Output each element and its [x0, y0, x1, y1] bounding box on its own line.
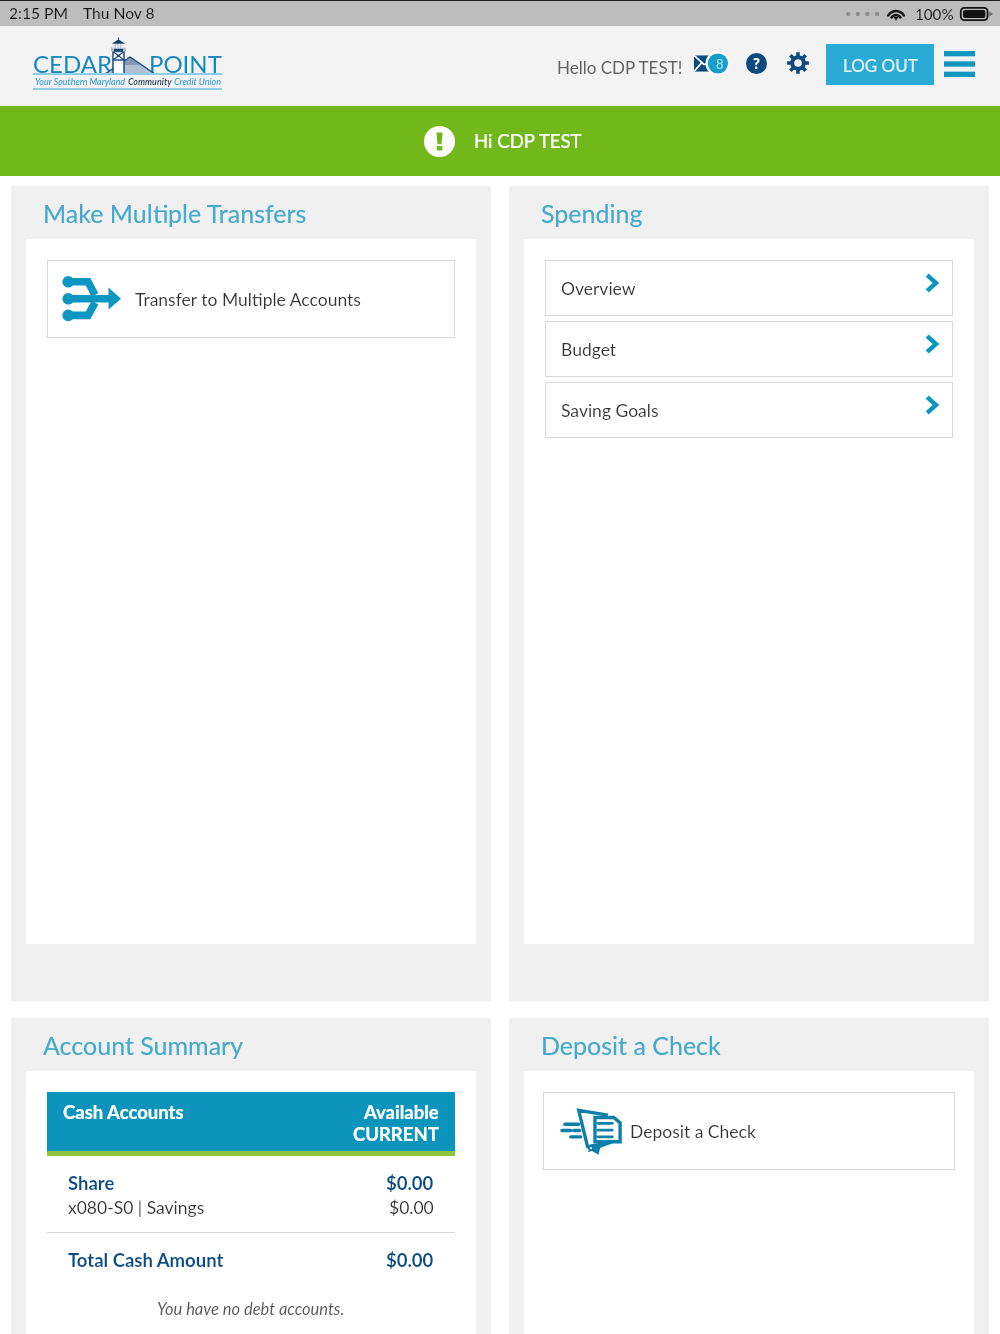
- staticText: Your Southern Maryland: [35, 76, 128, 87]
- staticText: Hello CDP TEST!: [557, 57, 683, 77]
- staticText: Total Cash Amount: [68, 1249, 224, 1271]
- staticText: 8: [716, 56, 724, 72]
- staticText: Overview: [561, 278, 636, 299]
- staticText: $0.00: [389, 1197, 434, 1218]
- button[interactable]: CEDAR: [33, 38, 222, 90]
- staticText: Spending: [541, 198, 643, 228]
- button[interactable]: Budget: [545, 321, 953, 377]
- button[interactable]: Help: [746, 53, 767, 74]
- staticText: You have no debt accounts.: [157, 1299, 345, 1319]
- staticText: Cash Accounts: [63, 1101, 184, 1123]
- staticText: Make Multiple Transfers: [43, 198, 307, 228]
- staticText: 100%: [915, 5, 954, 23]
- button[interactable]: Menu: [944, 51, 975, 77]
- staticText: Budget: [561, 339, 617, 360]
- staticText: Credit Union: [172, 76, 221, 87]
- button[interactable]: LOG OUT: [826, 44, 934, 85]
- staticText: Transfer to Multiple Accounts: [135, 289, 361, 310]
- staticText: Saving Goals: [561, 400, 659, 421]
- staticText: Account Summary: [43, 1030, 244, 1060]
- staticText: $0.00: [386, 1249, 434, 1271]
- staticText: Deposit a Check: [541, 1030, 721, 1060]
- button[interactable]: Deposit a Check: [543, 1092, 955, 1170]
- button[interactable]: Overview: [545, 260, 953, 316]
- button[interactable]: Messages: [694, 52, 729, 75]
- staticText: ?: [753, 54, 760, 72]
- staticText: CEDAR: [33, 49, 112, 78]
- staticText: 2:15 PM: [9, 4, 68, 23]
- staticText: x080-S0 | Savings: [68, 1197, 205, 1218]
- button[interactable]: Saving Goals: [545, 382, 953, 438]
- button[interactable]: Transfer to Multiple Accounts: [47, 260, 455, 338]
- staticText: Hi CDP TEST: [474, 130, 582, 152]
- staticText: LOG OUT: [843, 55, 918, 75]
- staticText: Share: [68, 1172, 115, 1194]
- staticText: Available: [364, 1101, 439, 1123]
- staticText: CURRENT: [353, 1123, 439, 1145]
- staticText: $0.00: [386, 1172, 434, 1194]
- staticText: Deposit a Check: [630, 1121, 756, 1142]
- staticText: POINT: [149, 49, 222, 78]
- staticText: Community: [128, 76, 172, 87]
- button[interactable]: Settings: [787, 52, 809, 74]
- staticText: Thu Nov 8: [83, 4, 155, 23]
